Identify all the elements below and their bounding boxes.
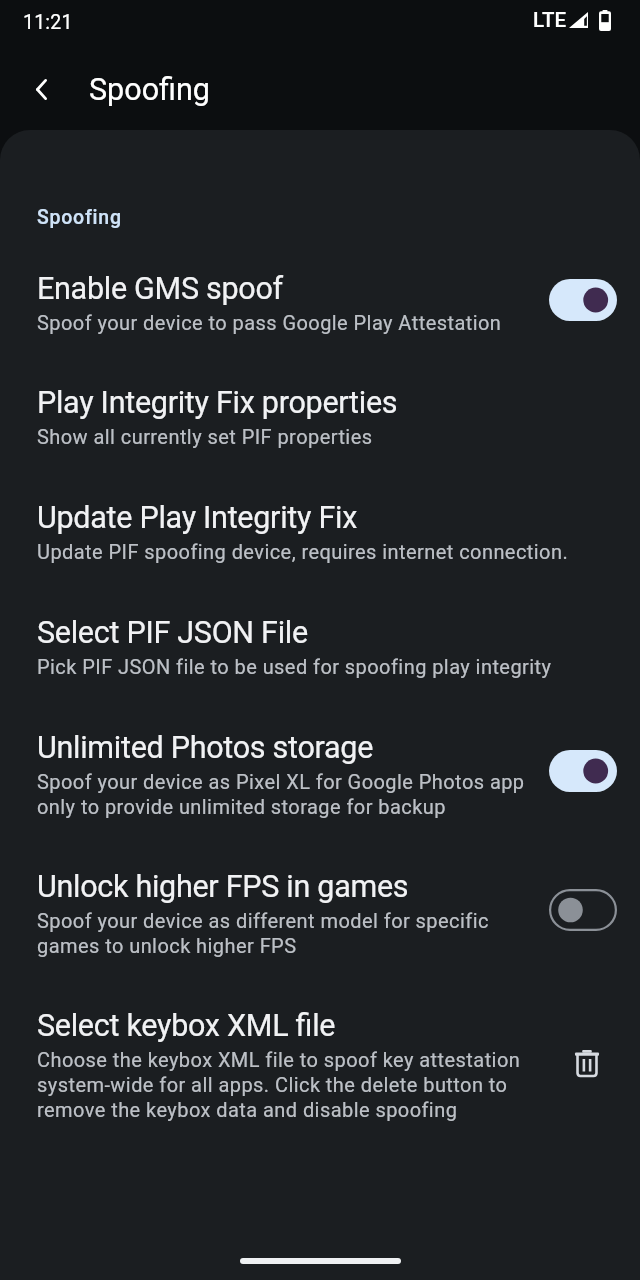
staticText: Select keybox XML file bbox=[37, 1009, 336, 1043]
button[interactable]: Unlock higher FPS in games bbox=[0, 870, 640, 958]
button[interactable]: Play Integrity Fix properties bbox=[0, 386, 640, 449]
staticText: Pick PIF JSON file to be used for spoofi… bbox=[37, 654, 552, 679]
staticText: Spoof your device to pass Google Play At… bbox=[37, 310, 502, 335]
staticText: Spoofing bbox=[37, 206, 122, 229]
button[interactable]: Enabled toggle bbox=[549, 750, 617, 792]
button[interactable]: Enable GMS spoof bbox=[0, 272, 640, 335]
staticText: Update Play Integrity Fix bbox=[37, 501, 357, 535]
button[interactable]: Enabled toggle bbox=[549, 279, 617, 321]
staticText: Select PIF JSON File bbox=[37, 616, 308, 650]
button[interactable]: Back bbox=[19, 67, 63, 111]
staticText: Spoof your device as Pixel XL for Google… bbox=[37, 769, 525, 819]
staticText: Spoof your device as different model for… bbox=[37, 908, 489, 958]
button[interactable]: Update Play Integrity Fix bbox=[0, 501, 640, 564]
staticText: Show all currently set PIF properties bbox=[37, 424, 373, 449]
button[interactable]: Select keybox XML file bbox=[0, 1009, 640, 1122]
button[interactable]: Disabled toggle bbox=[549, 889, 617, 931]
staticText: Play Integrity Fix properties bbox=[37, 386, 398, 420]
staticText: Spoofing bbox=[89, 72, 210, 108]
staticText: Choose the keybox XML file to spoof key … bbox=[37, 1047, 521, 1122]
staticText: Unlock higher FPS in games bbox=[37, 870, 409, 904]
staticText: 11:21 bbox=[23, 11, 73, 34]
staticText: Update PIF spoofing device, requires int… bbox=[37, 539, 569, 564]
staticText: Enable GMS spoof bbox=[37, 272, 283, 306]
staticText: LTE bbox=[533, 8, 567, 32]
staticText: Unlimited Photos storage bbox=[37, 731, 374, 765]
button[interactable]: Select PIF JSON File bbox=[0, 616, 640, 679]
button[interactable]: Delete keybox bbox=[563, 1039, 611, 1087]
button[interactable]: Unlimited Photos storage bbox=[0, 731, 640, 819]
